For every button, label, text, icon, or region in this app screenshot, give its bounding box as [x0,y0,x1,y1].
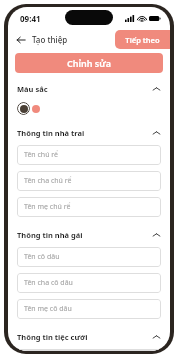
staticText: Tên cô dâu [24,252,60,262]
staticText: Thông tin nhà trai [17,128,85,138]
button[interactable]: Chỉnh sửa [15,53,163,73]
button[interactable]: Thông tin tiệc cưới [8,330,170,344]
staticText: Thông tin nhà gái [17,230,83,240]
other: Collapse [152,334,161,340]
staticText: Tên mẹ cô dâu [24,304,72,314]
staticText: Tên mẹ chú rể [24,202,71,212]
staticText: Tên chú rể [24,150,59,160]
staticText: Thông tin tiệc cưới [17,332,88,342]
staticText: 09:41 [20,13,41,24]
button[interactable]: Tiếp theo [115,30,170,49]
button[interactable]: Back [8,31,72,48]
button[interactable]: Tên cha chú rể [17,171,161,191]
button[interactable]: Ngày tiệc [17,349,161,351]
button[interactable]: Salmon colour [32,105,40,113]
other: Collapse [152,232,161,238]
staticText: Chỉnh sửa [67,57,112,69]
button[interactable]: Màu sắc [8,82,170,96]
staticText: Màu sắc [17,84,48,94]
other: Collapse [152,130,161,136]
button[interactable]: Tên mẹ cô dâu [17,299,161,319]
other: Collapse [152,86,161,92]
button[interactable]: Tên chú rể [17,145,161,165]
staticText: Tên cha chú rể [24,176,72,186]
staticText: Tạo thiệp [32,34,68,45]
button[interactable]: Thông tin nhà trai [8,126,170,140]
staticText: Tên cha cô dâu [24,278,73,288]
button[interactable]: Dark colour [17,102,30,115]
other: Back [16,35,26,45]
staticText: Tiếp theo [125,35,160,45]
button[interactable]: Tên mẹ chú rể [17,197,161,217]
button[interactable]: Tên cha cô dâu [17,273,161,293]
button[interactable]: Thông tin nhà gái [8,228,170,242]
button[interactable]: Tên cô dâu [17,247,161,267]
